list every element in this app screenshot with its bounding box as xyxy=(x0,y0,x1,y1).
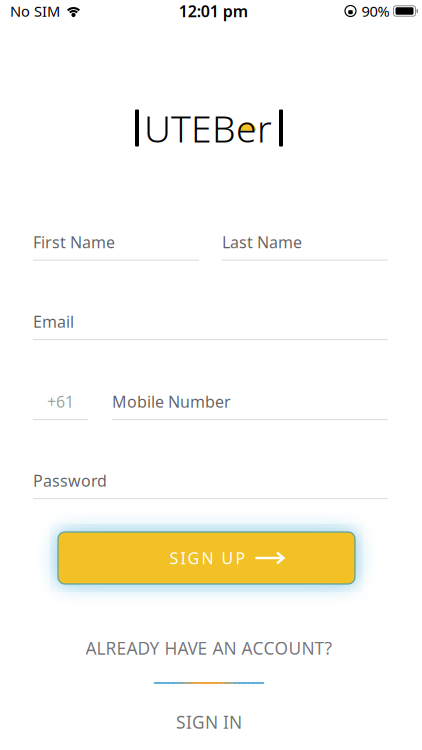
button[interactable]: +61 xyxy=(33,391,88,420)
staticText: r xyxy=(257,103,272,153)
button[interactable]: S I G N U P xyxy=(58,532,355,584)
button[interactable]: Password xyxy=(33,470,388,499)
staticText: Last Name xyxy=(222,231,302,253)
staticText: e xyxy=(236,103,257,153)
button[interactable]: Mobile Number xyxy=(112,391,388,420)
button[interactable]: Last Name xyxy=(222,231,388,261)
staticText: No SIM xyxy=(10,1,60,21)
staticText: Mobile Number xyxy=(112,391,231,412)
staticText: ALREADY HAVE AN ACCOUNT? xyxy=(85,636,332,659)
staticText: +61 xyxy=(47,391,74,412)
staticText: UTEB xyxy=(144,103,236,153)
button[interactable]: First Name xyxy=(33,231,199,261)
staticText: SIGN IN xyxy=(176,710,242,733)
staticText: 12:01 pm xyxy=(179,0,248,22)
button[interactable]: Email xyxy=(33,311,388,340)
staticText: 90% xyxy=(361,1,389,21)
staticText: S I G N U P xyxy=(169,547,245,569)
staticText: Email xyxy=(33,311,74,332)
button[interactable]: SIGN IN xyxy=(176,710,242,733)
staticText: Password xyxy=(33,470,107,491)
staticText: First Name xyxy=(33,231,115,253)
